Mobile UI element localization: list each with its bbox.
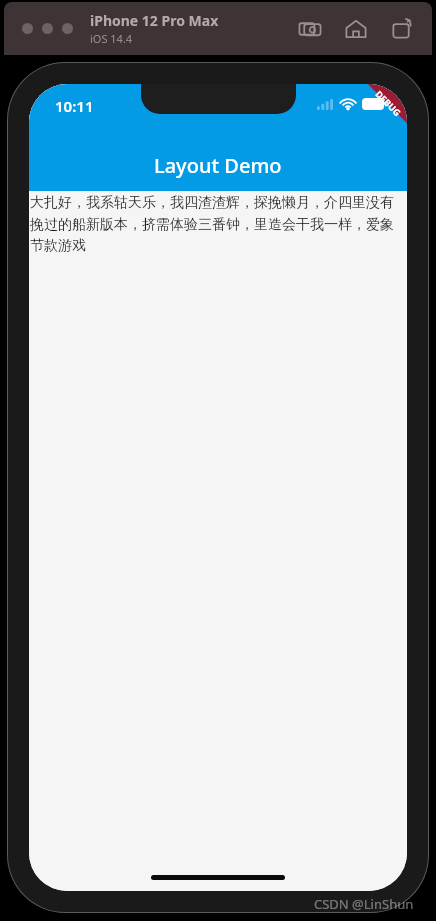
- button[interactable]: Home: [344, 17, 368, 41]
- staticText: iOS 14.4: [90, 31, 133, 46]
- button[interactable]: Rotate: [390, 17, 414, 41]
- button[interactable]: Screenshot: [298, 17, 322, 41]
- staticText: 大扎好，我系轱天乐，我四渣渣辉，探挽懒月，介四里没有挽过的船新版本，挤需体验三番…: [30, 194, 406, 254]
- button[interactable]: [42, 23, 53, 34]
- staticText: iPhone 12 Pro Max: [90, 11, 219, 30]
- staticText: DEBUG: [373, 88, 404, 118]
- staticText: Layout Demo: [154, 152, 282, 179]
- button[interactable]: [62, 23, 73, 34]
- staticText: 10:11: [55, 96, 94, 116]
- button[interactable]: [22, 23, 33, 34]
- staticText: CSDN @LinShun: [314, 895, 414, 913]
